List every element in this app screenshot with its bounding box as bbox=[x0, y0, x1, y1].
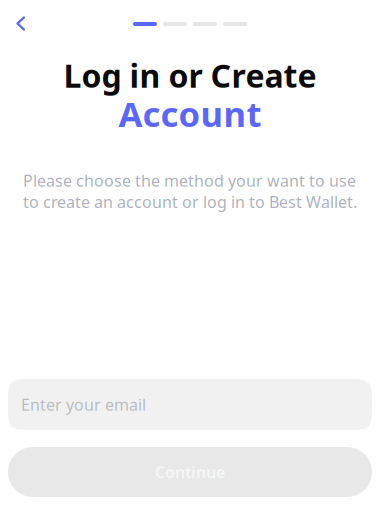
staticText: Please choose the method your want to us… bbox=[23, 170, 357, 212]
button[interactable]: Continue bbox=[8, 447, 372, 497]
button[interactable]: Enter your email bbox=[8, 379, 372, 430]
staticText: Enter your email bbox=[21, 394, 146, 415]
staticText: Account bbox=[118, 90, 261, 136]
button[interactable]: Back bbox=[1, 4, 41, 44]
staticText: Continue bbox=[155, 461, 225, 483]
staticText: Log in or Create bbox=[63, 54, 316, 96]
